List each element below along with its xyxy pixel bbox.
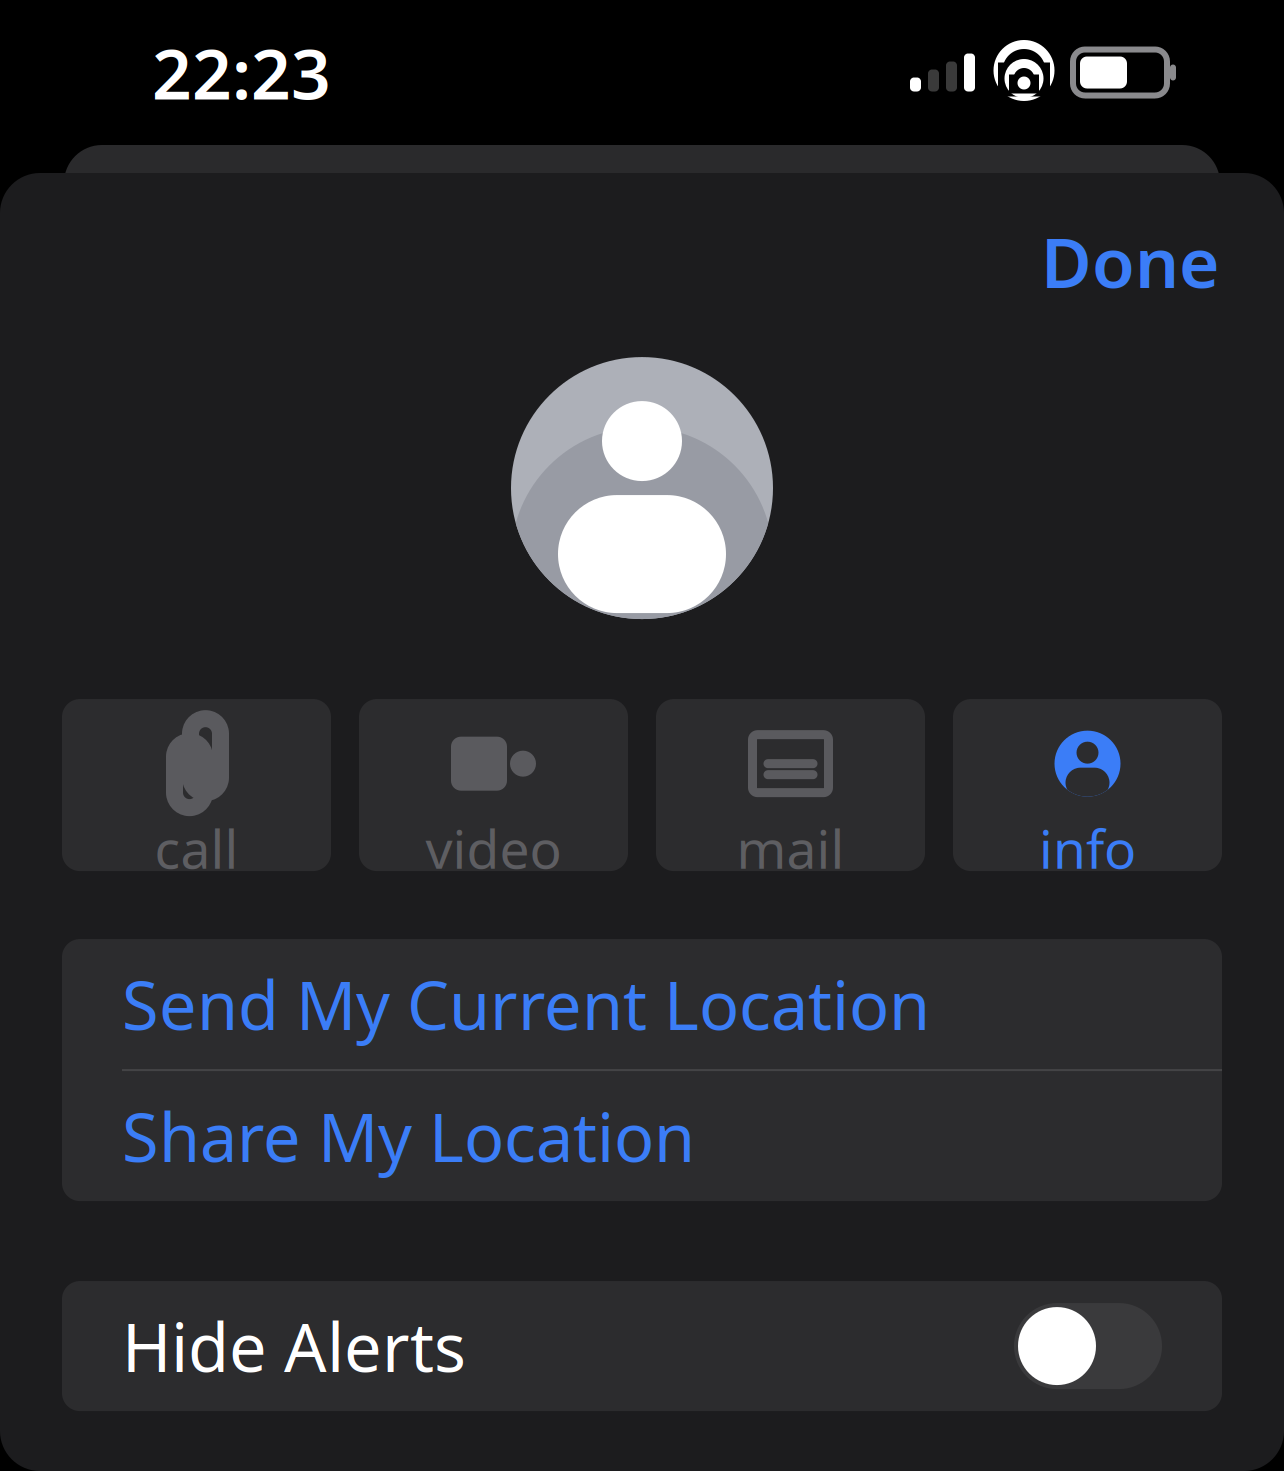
button[interactable]: mail [656,699,925,871]
staticText: call [154,813,238,883]
staticText: Done [1041,215,1220,307]
staticText: info [1039,813,1136,883]
staticText: mail [736,813,844,883]
button[interactable]: Share My Location [62,1071,1222,1201]
button[interactable]: call [62,699,331,871]
staticText: 22:23 [152,26,331,119]
button[interactable]: video [359,699,628,871]
button[interactable]: Hide Alerts [62,1281,1222,1411]
staticText: Share My Location [122,1092,695,1180]
staticText: Send My Current Location [122,960,930,1048]
button[interactable]: Done [1027,205,1234,317]
staticText: Hide Alerts [122,1302,466,1390]
button[interactable]: info [953,699,1222,871]
staticText: video [425,813,561,883]
button[interactable]: Send My Current Location [62,939,1222,1069]
